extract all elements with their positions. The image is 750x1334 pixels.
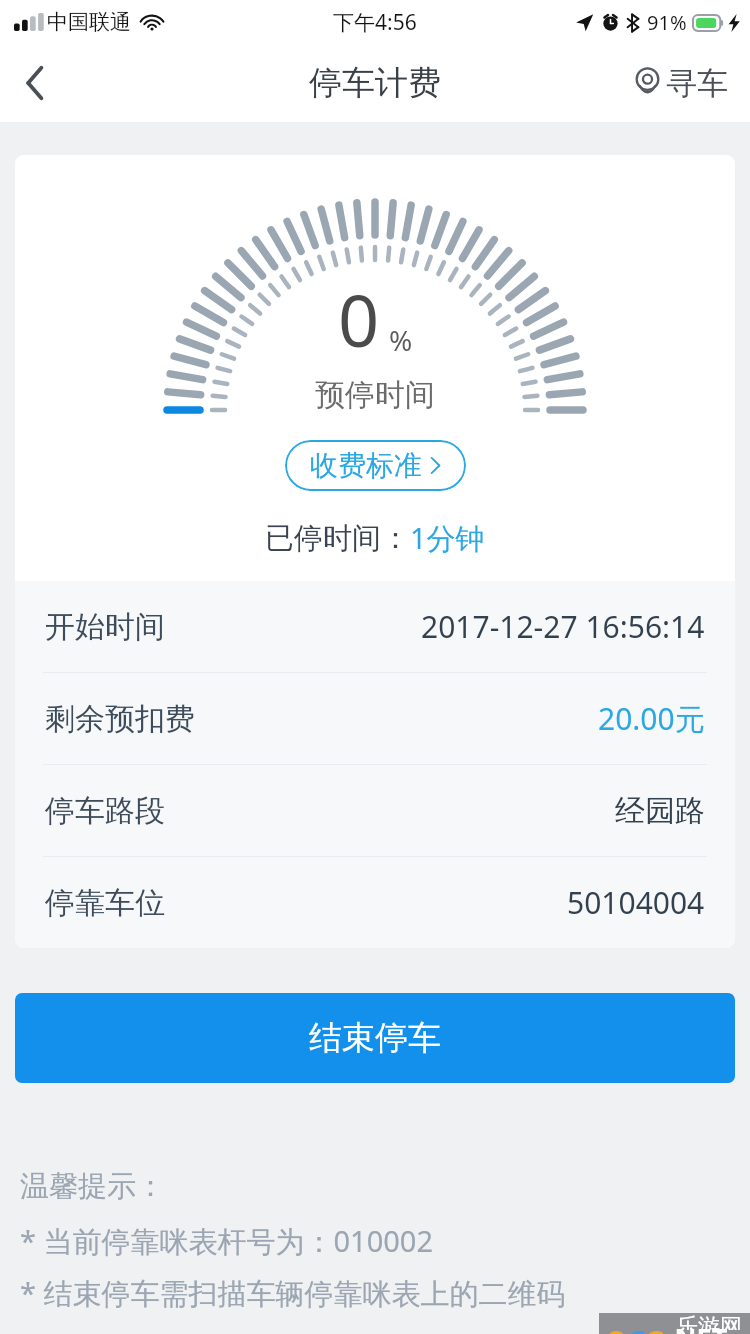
- staticText: 寻车: [666, 64, 728, 103]
- staticText: 停车路段: [45, 792, 165, 830]
- button[interactable]: 停靠车位: [15, 857, 735, 948]
- staticText: 收费标准: [310, 448, 422, 483]
- staticText: 剩余预扣费: [45, 700, 195, 738]
- staticText: 停车计费: [309, 62, 441, 104]
- button[interactable]: 结束停车: [15, 993, 735, 1083]
- button[interactable]: 返回: [0, 44, 70, 122]
- staticText: 9: [607, 1319, 627, 1334]
- staticText: 开始时间: [45, 608, 165, 646]
- staticText: 2: [647, 1319, 667, 1334]
- staticText: 0: [338, 270, 380, 368]
- staticText: 中国联通: [47, 9, 131, 35]
- button[interactable]: 收费标准: [285, 440, 466, 491]
- staticText: 2017-12-27 16:56:14: [421, 606, 705, 647]
- staticText: .NET: [667, 1319, 728, 1334]
- staticText: %: [389, 321, 413, 359]
- staticText: 下午4:56: [333, 8, 417, 37]
- button[interactable]: 寻车: [622, 44, 750, 122]
- staticText: 20.00元: [598, 698, 705, 739]
- staticText: 结束停车: [309, 1017, 441, 1059]
- staticText: * 当前停靠咪表杆号为：010002: [20, 1221, 434, 1261]
- staticText: 6: [627, 1319, 647, 1334]
- staticText: 预停时间: [315, 376, 435, 414]
- staticText: 温馨提示：: [20, 1168, 165, 1205]
- button[interactable]: 剩余预扣费: [15, 673, 735, 764]
- button[interactable]: 停车路段: [15, 765, 735, 856]
- staticText: 1分钟: [410, 518, 485, 558]
- staticText: 91%: [647, 9, 687, 36]
- staticText: 已停时间：: [265, 520, 410, 557]
- staticText: * 结束停车需扫描车辆停靠咪表上的二维码: [20, 1273, 566, 1313]
- staticText: 50104004: [567, 882, 705, 923]
- staticText: 经园路: [615, 792, 705, 830]
- button[interactable]: 开始时间: [15, 581, 735, 672]
- staticText: 停靠车位: [45, 884, 165, 922]
- staticText: 乐游网: [676, 1313, 742, 1330]
